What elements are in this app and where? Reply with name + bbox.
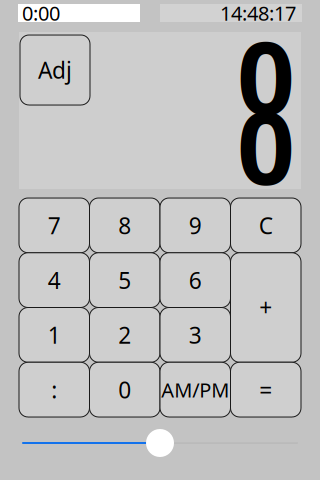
button[interactable]: 5 (89, 253, 160, 308)
staticText: + (259, 292, 272, 322)
button[interactable]: Adj (20, 35, 90, 105)
button[interactable]: 1 (19, 307, 89, 362)
staticText: Adj (38, 55, 72, 85)
staticText: = (259, 375, 272, 405)
button[interactable]: 4 (19, 253, 89, 308)
button[interactable]: = (230, 362, 301, 417)
button[interactable]: 8 (89, 198, 160, 253)
staticText: 4 (48, 265, 61, 295)
staticText: AM/PM (161, 376, 229, 403)
staticText: 0:00 (22, 0, 60, 26)
staticText: 3 (189, 320, 202, 350)
button[interactable]: 7 (19, 198, 89, 253)
staticText: 0 (237, 8, 295, 143)
button[interactable]: + (230, 253, 301, 362)
button[interactable]: 6 (160, 253, 230, 308)
button[interactable]: : (19, 362, 89, 417)
staticText: 7 (48, 210, 61, 240)
button[interactable]: 2 (89, 307, 160, 362)
staticText: 0 (237, 78, 295, 213)
staticText: 9 (189, 210, 202, 240)
staticText: C (259, 210, 273, 240)
staticText: 0 (118, 375, 131, 405)
staticText: 8 (118, 210, 131, 240)
button[interactable]: 3 (160, 307, 230, 362)
staticText: 6 (189, 265, 202, 295)
button[interactable]: AM/PM (160, 362, 230, 417)
button[interactable]: C (230, 198, 301, 253)
staticText: 2 (118, 320, 131, 350)
button[interactable]: 9 (160, 198, 230, 253)
staticText: 14:48:17 (220, 0, 296, 26)
staticText: : (51, 375, 57, 405)
button[interactable]: 0 (89, 362, 160, 417)
staticText: 1 (48, 320, 61, 350)
staticText: 5 (118, 265, 131, 295)
